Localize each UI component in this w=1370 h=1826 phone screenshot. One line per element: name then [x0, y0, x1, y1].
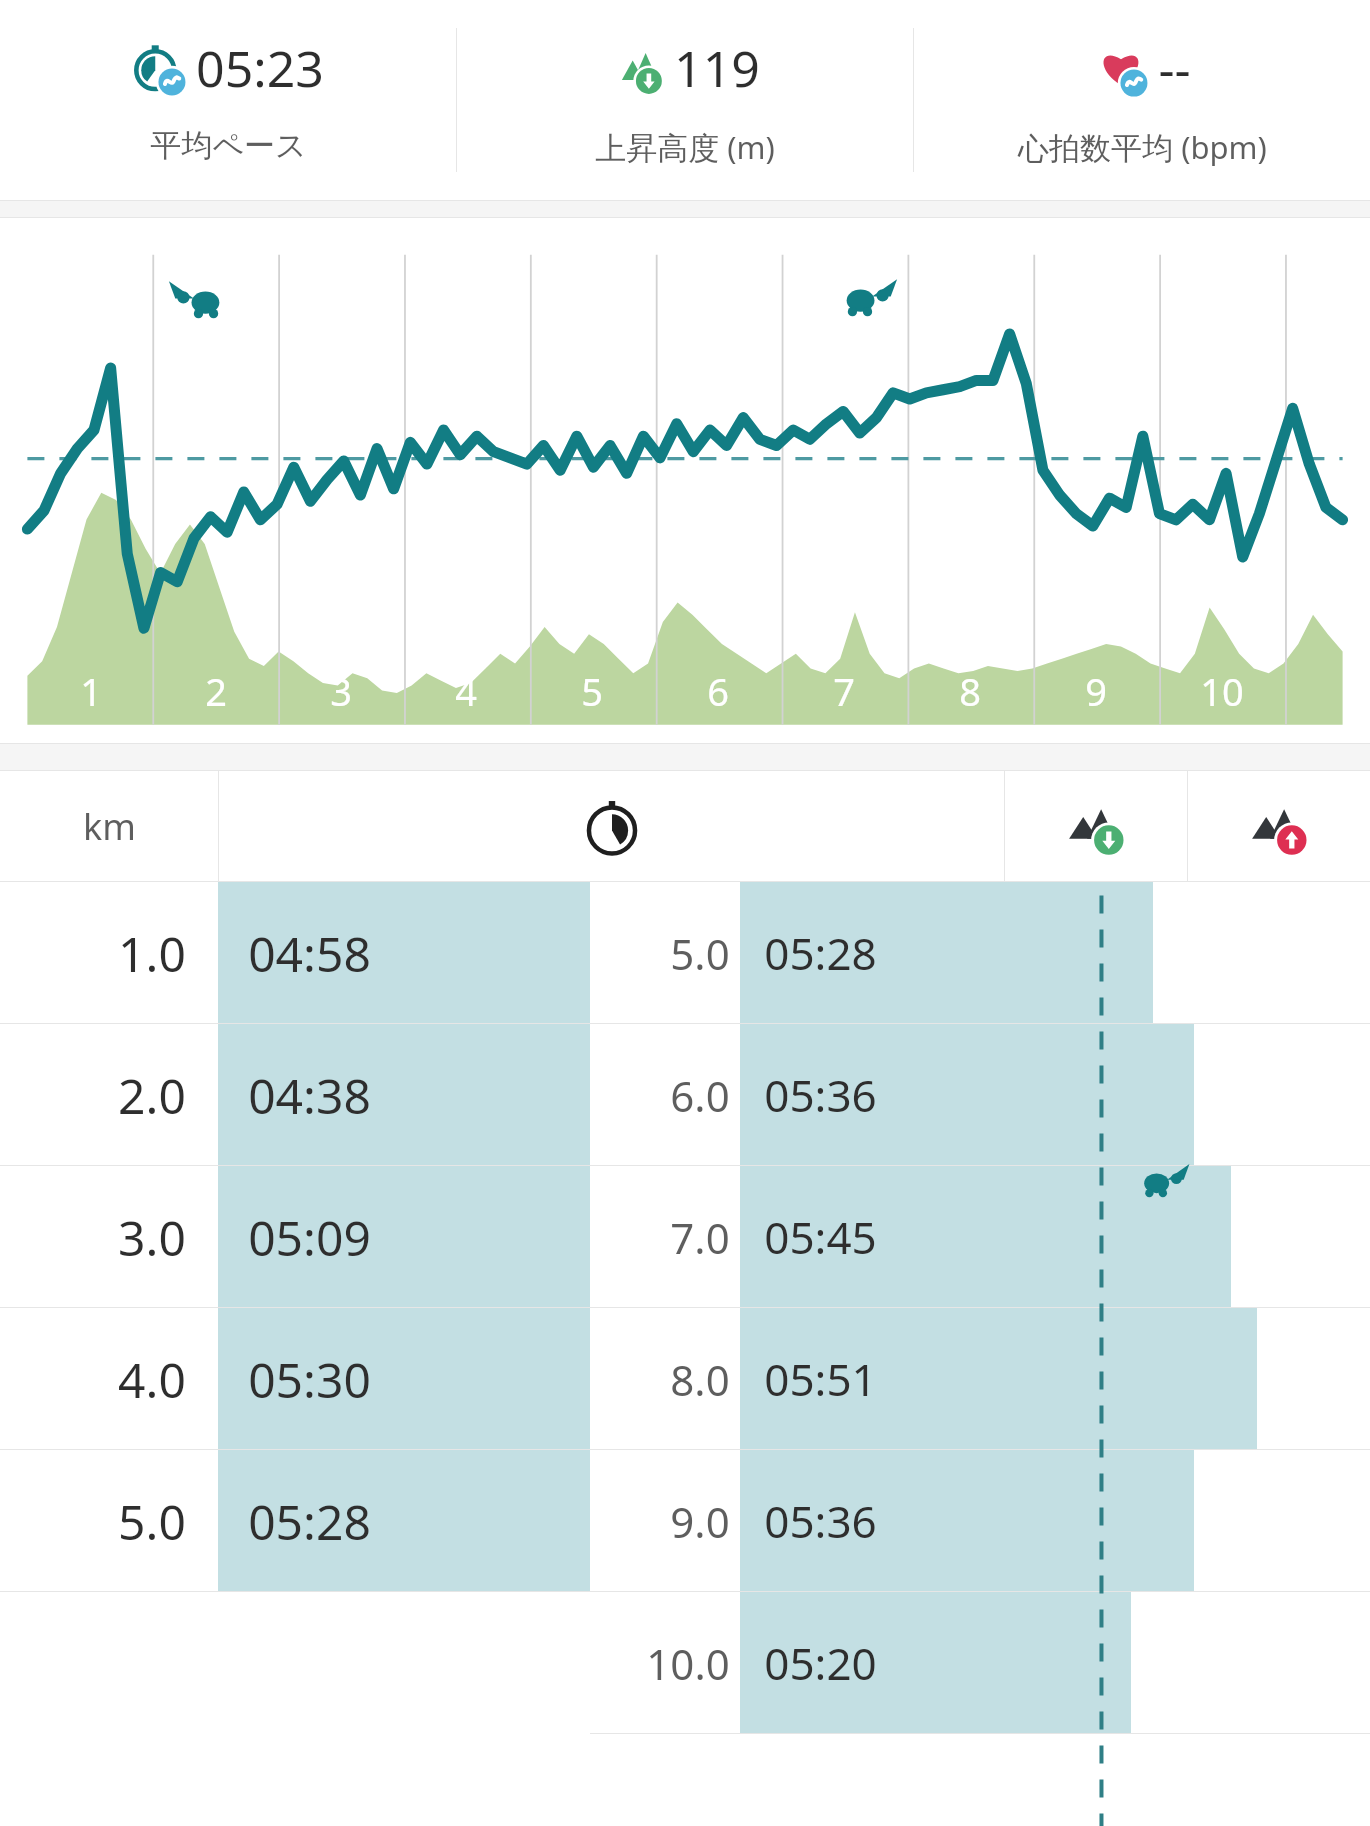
staticText: 5.0	[118, 1489, 186, 1554]
staticText: 1	[80, 665, 102, 717]
staticText: 05:20	[764, 1633, 877, 1693]
staticText: 2	[205, 665, 227, 717]
staticText: 平均ペース	[150, 126, 307, 165]
staticText: 5	[581, 665, 603, 717]
staticText: 8.0	[670, 1351, 730, 1408]
staticText: 1.0	[118, 921, 186, 986]
staticText: km	[83, 802, 136, 851]
staticText: 10	[1200, 665, 1244, 717]
button[interactable]: 5.0	[590, 882, 1370, 1024]
button[interactable]: 7.0	[590, 1166, 1370, 1308]
staticText: 05:23	[196, 34, 324, 102]
button[interactable]: 3.0	[0, 1166, 1370, 1308]
staticText: 05:09	[248, 1205, 371, 1270]
button[interactable]: 10.0	[590, 1592, 1370, 1734]
staticText: 05:28	[248, 1489, 371, 1554]
button[interactable]: 9.0	[590, 1450, 1370, 1592]
staticText: 9.0	[670, 1493, 730, 1550]
staticText: 6.0	[670, 1067, 730, 1124]
button[interactable]: 2.0	[0, 1024, 1370, 1166]
staticText: 9	[1085, 665, 1107, 717]
button[interactable]: 119	[457, 0, 913, 200]
staticText: 05:36	[764, 1065, 877, 1125]
staticText: 04:38	[248, 1063, 371, 1128]
staticText: 8	[959, 665, 981, 717]
button[interactable]: 05:23	[0, 0, 456, 200]
button[interactable]: --	[914, 0, 1370, 200]
staticText: 10.0	[646, 1635, 730, 1692]
button[interactable]: 6.0	[590, 1024, 1370, 1166]
staticText: 119	[674, 34, 760, 102]
button[interactable]: 8.0	[590, 1308, 1370, 1450]
other: Elevation loss	[1247, 794, 1311, 858]
staticText: 3.0	[118, 1205, 186, 1270]
staticText: 4	[455, 665, 477, 717]
staticText: 7	[833, 665, 855, 717]
other: Pace	[580, 794, 644, 858]
button[interactable]: 5.0	[0, 1450, 1370, 1592]
button[interactable]: 4.0	[0, 1308, 1370, 1450]
staticText: 上昇高度 (m)	[595, 126, 775, 168]
staticText: 3	[330, 665, 352, 717]
staticText: 05:51	[764, 1349, 877, 1409]
staticText: 05:36	[764, 1491, 877, 1551]
staticText: 4.0	[118, 1347, 186, 1412]
staticText: 心拍数平均 (bpm)	[1018, 126, 1267, 168]
staticText: 2.0	[118, 1063, 186, 1128]
button[interactable]: 1.0	[0, 882, 1370, 1024]
staticText: --	[1158, 34, 1191, 102]
other: Elevation gain	[1064, 794, 1128, 858]
staticText: 05:30	[248, 1347, 371, 1412]
staticText: 04:58	[248, 921, 371, 986]
staticText: 7.0	[670, 1209, 730, 1266]
button[interactable]: 1	[0, 218, 1370, 743]
staticText: 5.0	[670, 925, 730, 982]
staticText: 05:28	[764, 923, 877, 983]
other: Slowest split marker	[1140, 1163, 1192, 1215]
staticText: 6	[707, 665, 729, 717]
staticText: 05:45	[764, 1207, 877, 1267]
